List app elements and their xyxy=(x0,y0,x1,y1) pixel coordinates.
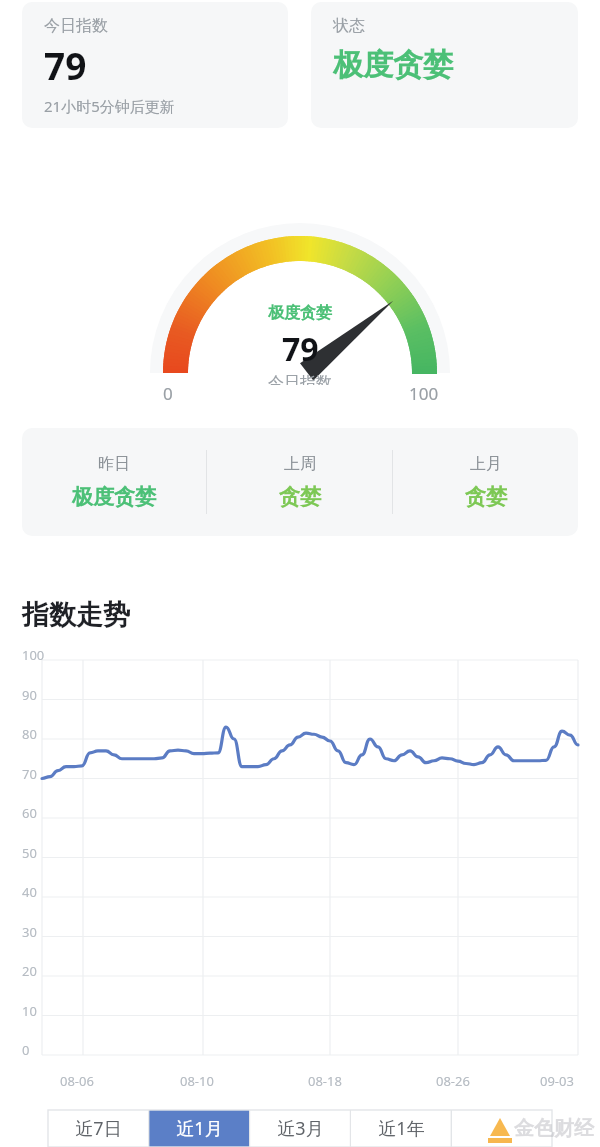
staticText: 70 xyxy=(22,765,37,783)
staticText: 79 xyxy=(282,327,319,371)
staticText: 贪婪 xyxy=(465,484,507,510)
staticText: 极度贪婪 xyxy=(72,484,156,510)
staticText: 今日指数 xyxy=(44,16,108,36)
staticText: 100 xyxy=(409,382,439,405)
staticText: 30 xyxy=(22,923,37,941)
staticText: 贪婪 xyxy=(279,484,321,510)
staticText: 0 xyxy=(22,1041,30,1059)
staticText: 100 xyxy=(22,646,45,664)
staticText: 0 xyxy=(163,382,173,405)
staticText: 08-18 xyxy=(308,1072,342,1090)
staticText: 极度贪婪 xyxy=(268,303,332,323)
staticText: 近3月 xyxy=(277,1116,324,1141)
button[interactable]: 近1年 xyxy=(351,1110,451,1147)
button[interactable]: 昨日 xyxy=(22,428,206,536)
staticText: 近1月 xyxy=(176,1116,223,1141)
staticText: 昨日 xyxy=(98,454,130,474)
staticText: 10 xyxy=(22,1002,37,1020)
button[interactable]: 近3月 xyxy=(250,1110,350,1147)
other: 金色财经 logo xyxy=(484,1114,594,1144)
button[interactable]: 今日指数 xyxy=(22,2,288,128)
staticText: 上月 xyxy=(470,454,502,474)
staticText: 60 xyxy=(22,804,37,822)
button[interactable]: 近1月 xyxy=(149,1110,250,1147)
staticText: 09-03 xyxy=(540,1072,574,1090)
staticText: 80 xyxy=(22,725,37,743)
staticText: 79 xyxy=(44,40,87,90)
button[interactable] xyxy=(452,1110,552,1147)
staticText: 金色财经 xyxy=(514,1116,594,1141)
staticText: 20 xyxy=(22,962,37,980)
staticText: 上周 xyxy=(284,454,316,474)
staticText: 状态 xyxy=(333,16,365,36)
staticText: 指数走势 xyxy=(22,598,130,632)
button[interactable]: 近7日 xyxy=(48,1110,149,1147)
staticText: 50 xyxy=(22,844,37,862)
staticText: 近1年 xyxy=(378,1116,425,1141)
staticText: 40 xyxy=(22,883,37,901)
staticText: 极度贪婪 xyxy=(333,46,453,84)
staticText: 08-26 xyxy=(436,1072,470,1090)
button[interactable]: 状态 xyxy=(311,2,578,128)
staticText: 08-06 xyxy=(60,1072,94,1090)
button[interactable]: 上月 xyxy=(393,428,578,536)
staticText: 今日指数 xyxy=(268,373,332,385)
staticText: 08-10 xyxy=(180,1072,214,1090)
staticText: 近7日 xyxy=(75,1116,122,1141)
staticText: 21小时5分钟后更新 xyxy=(44,96,175,116)
staticText: 90 xyxy=(22,686,37,704)
button[interactable]: 上周 xyxy=(207,428,392,536)
